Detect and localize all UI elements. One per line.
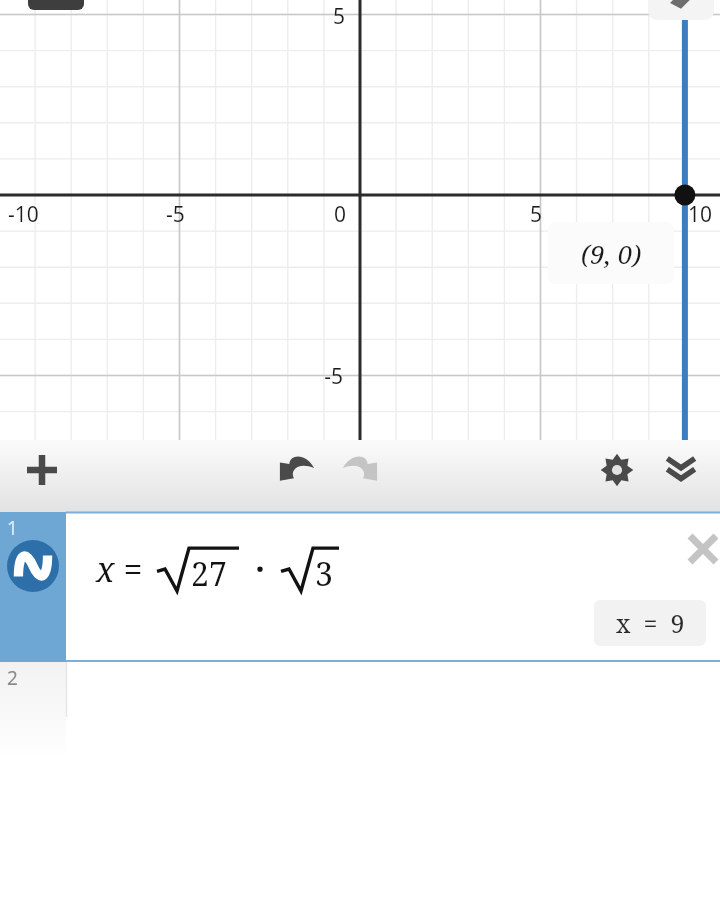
button[interactable]: 2 [0,662,66,762]
button[interactable]: Edit label [648,0,714,20]
staticText: x = [96,546,143,592]
button[interactable]: x = [66,512,720,662]
button[interactable]: Settings [587,440,647,500]
button[interactable]: Delete expression [674,520,720,578]
button[interactable]: Add expression [12,440,72,500]
staticText: 2 [7,665,18,691]
button[interactable]: (9, 0) [548,222,674,284]
staticText: x = 9 [616,606,685,640]
button[interactable]: 1 [0,512,66,662]
staticText: 5 [530,200,543,229]
staticText: 0 [334,200,347,229]
staticText: 10 [688,200,713,229]
staticText: (9, 0) [581,236,642,271]
button[interactable]: Redo [330,440,390,500]
button[interactable]: Zoom out [28,0,84,10]
staticText: 27 [191,552,227,596]
button[interactable]: x = 9 [594,600,706,646]
staticText: -5 [324,362,343,391]
staticText: 1 [7,515,18,541]
staticText: -10 [8,200,39,229]
staticText: 5 [332,2,345,31]
staticText: 3 [315,552,333,596]
button[interactable]: Collapse keypad [651,440,711,500]
staticText: · [255,546,265,592]
staticText: -5 [166,200,185,229]
button[interactable]: Undo [267,440,327,500]
